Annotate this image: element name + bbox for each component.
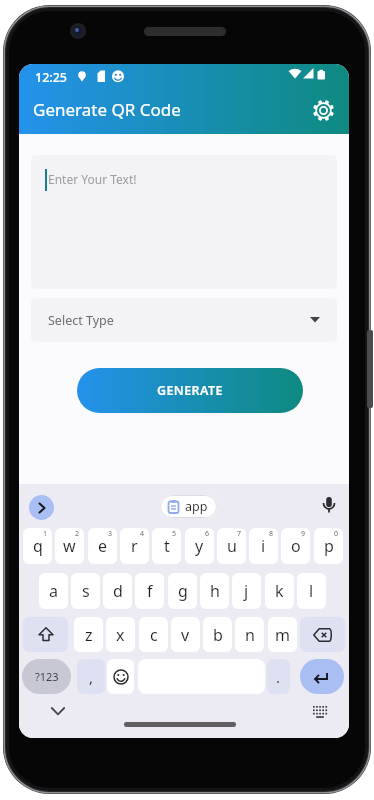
button[interactable]: j	[232, 573, 261, 609]
staticText: 3	[108, 529, 113, 539]
staticText: c	[150, 624, 158, 646]
staticText: 8	[269, 529, 274, 539]
staticText: z	[85, 624, 93, 646]
staticText: m	[275, 624, 290, 646]
button[interactable]: v	[171, 617, 200, 652]
staticText: GENERATE	[157, 382, 223, 399]
staticText: Generate QR Code	[33, 98, 181, 121]
staticText: v	[181, 624, 190, 646]
button[interactable]: q	[23, 528, 52, 564]
button[interactable]: Select Type	[31, 298, 337, 342]
button[interactable]: t	[152, 528, 181, 564]
staticText: s	[82, 580, 90, 602]
staticText: Select Type	[48, 312, 114, 329]
staticText: p	[324, 535, 334, 557]
button[interactable]	[29, 495, 54, 520]
staticText: f	[147, 580, 153, 602]
staticText: j	[244, 580, 249, 602]
button[interactable]	[23, 617, 68, 652]
staticText: 2	[75, 529, 80, 539]
staticText: g	[178, 580, 188, 602]
staticText: 0	[334, 529, 339, 539]
staticText: o	[291, 535, 301, 557]
button[interactable]: x	[106, 617, 135, 652]
staticText: t	[164, 535, 170, 557]
staticText: 12:25	[35, 69, 68, 86]
button[interactable]: h	[200, 573, 229, 609]
button[interactable]: p	[314, 528, 343, 564]
staticText: r	[131, 535, 138, 557]
staticText: 9	[301, 529, 306, 539]
staticText: l	[309, 580, 314, 602]
button[interactable]: g	[168, 573, 197, 609]
staticText: 7	[237, 529, 242, 539]
button[interactable]	[300, 659, 344, 694]
button[interactable]: o	[281, 528, 310, 564]
button[interactable]: c	[139, 617, 168, 652]
button[interactable]: m	[268, 617, 297, 652]
staticText: q	[33, 535, 43, 557]
staticText: h	[210, 580, 220, 602]
staticText: 6	[205, 529, 210, 539]
button[interactable]: l	[297, 573, 326, 609]
staticText: b	[213, 624, 223, 646]
button[interactable]: ?123	[22, 659, 71, 694]
button[interactable]: u	[217, 528, 246, 564]
staticText: x	[116, 624, 125, 646]
button[interactable]: Enter Your Text!	[31, 155, 337, 289]
button[interactable]: s	[71, 573, 100, 609]
staticText: ,	[89, 667, 94, 687]
staticText: 4	[140, 529, 145, 539]
button[interactable]: f	[135, 573, 164, 609]
button[interactable]: e	[88, 528, 117, 564]
button[interactable]	[318, 496, 340, 518]
button[interactable]: z	[74, 617, 103, 652]
staticText: w	[63, 535, 76, 557]
staticText: n	[245, 624, 255, 646]
button[interactable]: k	[265, 573, 294, 609]
staticText: e	[98, 535, 108, 557]
staticText: 5	[172, 529, 177, 539]
staticText: k	[275, 580, 284, 602]
button[interactable]	[107, 659, 134, 694]
button[interactable]	[310, 97, 337, 124]
button[interactable]: a	[39, 573, 68, 609]
staticText: d	[113, 580, 123, 602]
staticText: ?123	[35, 669, 59, 684]
button[interactable]: r	[120, 528, 149, 564]
staticText: i	[261, 535, 266, 557]
staticText: 1	[43, 529, 48, 539]
button[interactable]: app	[160, 495, 217, 518]
button[interactable]: n	[235, 617, 264, 652]
staticText: app	[185, 498, 208, 515]
staticText: a	[49, 580, 58, 602]
staticText: y	[195, 535, 204, 557]
button[interactable]: .	[267, 659, 290, 694]
button[interactable]: b	[203, 617, 232, 652]
button[interactable]: d	[103, 573, 132, 609]
button[interactable]: i	[249, 528, 278, 564]
button[interactable]: ,	[77, 659, 105, 694]
button[interactable]	[300, 617, 345, 652]
staticText: .	[276, 667, 281, 687]
staticText: u	[227, 535, 237, 557]
staticText: Enter Your Text!	[48, 171, 137, 187]
button[interactable]: y	[185, 528, 214, 564]
button[interactable]: GENERATE	[77, 368, 303, 413]
button[interactable]: w	[55, 528, 84, 564]
